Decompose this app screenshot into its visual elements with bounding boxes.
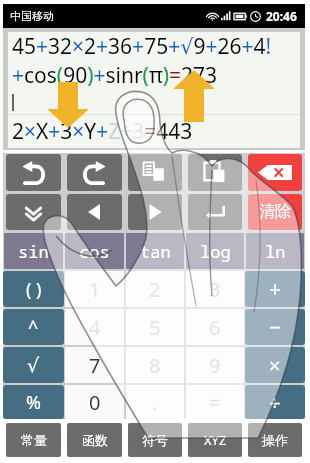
button[interactable]: .: [126, 385, 184, 419]
staticText: +: [269, 275, 282, 304]
staticText: ( ): [26, 277, 42, 302]
staticText: 6: [209, 314, 221, 341]
button[interactable]: 常量: [6, 423, 61, 457]
staticText: 1: [89, 276, 101, 303]
staticText: √: [27, 354, 40, 376]
button[interactable]: ( ): [3, 271, 64, 307]
staticText: 清除: [259, 202, 291, 222]
button[interactable]: XYZ: [188, 423, 242, 457]
button[interactable]: +: [245, 271, 305, 307]
button[interactable]: 符号: [128, 423, 182, 457]
button[interactable]: ln: [246, 233, 304, 269]
staticText: %: [26, 390, 41, 415]
button[interactable]: Paste: [188, 154, 242, 191]
button[interactable]: sin: [4, 233, 63, 269]
button[interactable]: 清除: [248, 194, 302, 230]
staticText: 2×X+3×Y+Z÷3=443: [12, 117, 193, 146]
button[interactable]: 0: [65, 385, 124, 419]
staticText: 7: [89, 352, 101, 379]
button[interactable]: ÷: [245, 385, 305, 419]
staticText: 3: [209, 276, 221, 303]
staticText: ^: [28, 315, 39, 340]
button[interactable]: ×: [245, 347, 305, 383]
staticText: 操作: [262, 432, 288, 448]
button[interactable]: 2: [126, 271, 184, 307]
staticText: ÷: [269, 389, 281, 416]
button[interactable]: ^: [3, 309, 64, 345]
button[interactable]: 9: [186, 347, 244, 383]
staticText: 符号: [142, 432, 168, 448]
staticText: sin: [18, 240, 49, 263]
button[interactable]: Move right: [128, 194, 182, 230]
button[interactable]: 函数: [67, 423, 122, 457]
button[interactable]: Copy: [128, 154, 182, 191]
button[interactable]: 8: [126, 347, 184, 383]
button[interactable]: 1: [65, 271, 124, 307]
button[interactable]: 6: [186, 309, 244, 345]
staticText: 常量: [21, 432, 47, 448]
button[interactable]: Delete: [248, 154, 302, 191]
button[interactable]: 7: [65, 347, 124, 383]
staticText: =: [209, 389, 221, 416]
button[interactable]: tan: [126, 233, 184, 269]
staticText: cos: [79, 240, 110, 263]
staticText: ×: [269, 352, 281, 379]
button[interactable]: −: [245, 309, 305, 345]
button[interactable]: Redo: [67, 154, 122, 191]
staticText: −: [269, 313, 282, 342]
staticText: 2: [149, 276, 161, 303]
button[interactable]: 3: [186, 271, 244, 307]
staticText: 45+32×2+36+75+√9+26+4!: [12, 32, 272, 61]
button[interactable]: Undo: [6, 154, 61, 191]
button[interactable]: 4: [65, 309, 124, 345]
staticText: .: [152, 389, 158, 416]
staticText: 0: [89, 389, 101, 416]
staticText: +cos(90)+sinr(π)=273: [12, 61, 217, 90]
staticText: ln: [265, 240, 286, 263]
staticText: 9: [209, 352, 221, 379]
staticText: 8: [149, 352, 161, 379]
button[interactable]: Move left: [67, 194, 122, 230]
button[interactable]: cos: [65, 233, 124, 269]
staticText: 函数: [82, 432, 108, 448]
button[interactable]: 操作: [248, 423, 302, 457]
button[interactable]: Enter: [188, 194, 242, 230]
button[interactable]: Collapse: [6, 194, 61, 230]
staticText: 4: [89, 314, 101, 341]
button[interactable]: %: [3, 385, 64, 419]
button[interactable]: √: [3, 347, 64, 383]
staticText: log: [200, 240, 231, 263]
staticText: tan: [140, 240, 171, 263]
staticText: XYZ: [204, 431, 227, 449]
staticText: 20:46: [266, 8, 297, 24]
button[interactable]: log: [186, 233, 244, 269]
staticText: 中国移动: [10, 9, 54, 23]
button[interactable]: 5: [126, 309, 184, 345]
staticText: 5: [149, 314, 161, 341]
